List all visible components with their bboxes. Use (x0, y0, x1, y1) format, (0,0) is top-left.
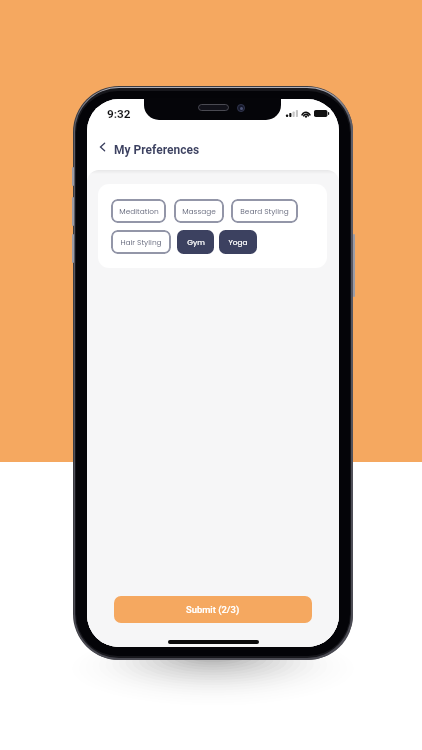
staticText: Yoga (228, 237, 248, 247)
button[interactable]: Back (92, 137, 112, 157)
staticText: Meditation (119, 206, 159, 216)
button[interactable]: Submit (2/3) (114, 596, 312, 623)
button[interactable]: Hair Styling (111, 230, 171, 254)
button[interactable]: Gym (177, 230, 214, 254)
staticText: Beard Styling (240, 206, 289, 216)
button[interactable]: Beard Styling (231, 199, 298, 223)
staticText: Massage (182, 206, 216, 216)
staticText: My Preferences (114, 143, 200, 157)
staticText: 9:32 (107, 107, 131, 121)
staticText: Submit (2/3) (186, 604, 240, 615)
button[interactable]: Yoga (219, 230, 257, 254)
staticText: Hair Styling (120, 237, 162, 247)
button[interactable]: Massage (174, 199, 224, 223)
staticText: Gym (187, 237, 205, 247)
button[interactable]: Meditation (111, 199, 166, 223)
